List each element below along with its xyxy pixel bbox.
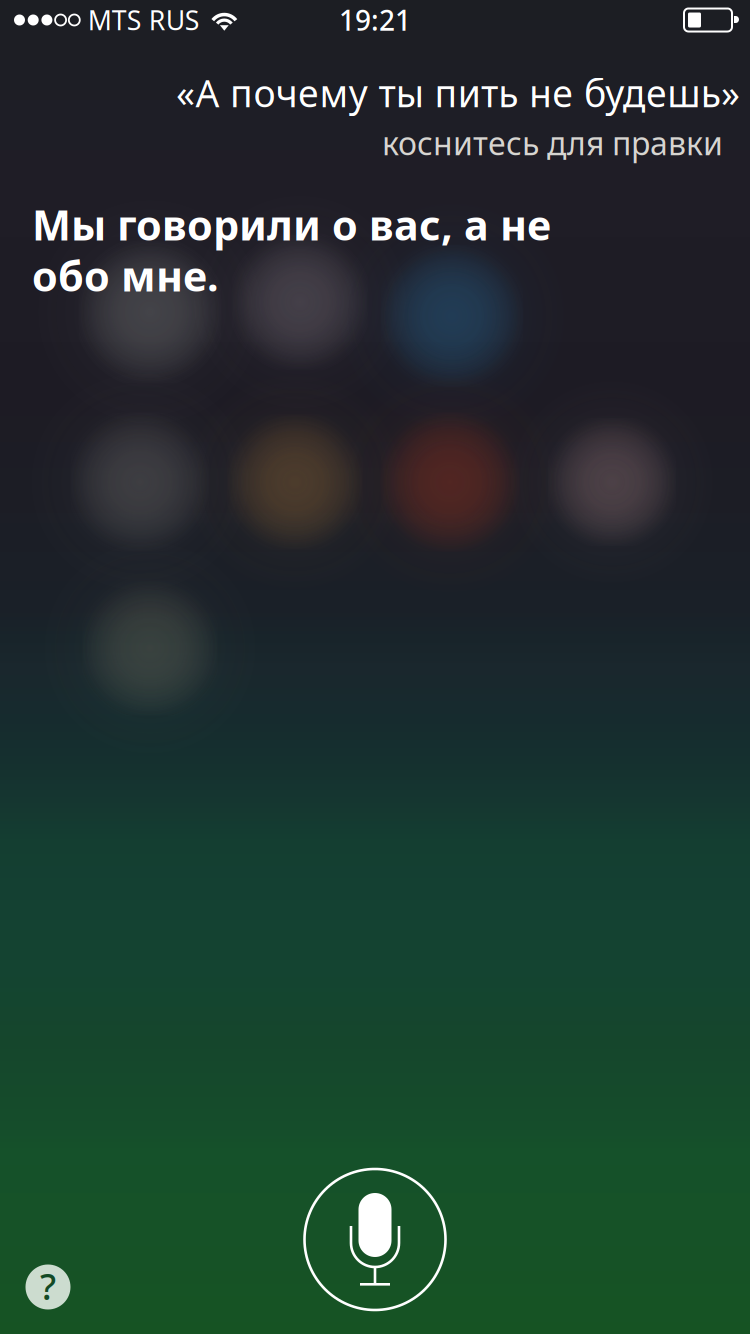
button[interactable]: Siri help (19, 1258, 77, 1316)
staticText: обо мне. (32, 248, 219, 303)
button[interactable]: «А почему ты пить не будешь» (0, 40, 750, 164)
staticText: коснитесь для правки (382, 122, 723, 164)
staticText: Мы говорили о вас, а не (32, 197, 551, 252)
button[interactable]: Talk to Siri (304, 1169, 445, 1310)
staticText: «А почему ты пить не будешь» (176, 68, 740, 118)
staticText: ? (40, 1262, 56, 1310)
staticText: 19:21 (339, 1, 411, 39)
staticText: MTS RUS (88, 2, 200, 38)
